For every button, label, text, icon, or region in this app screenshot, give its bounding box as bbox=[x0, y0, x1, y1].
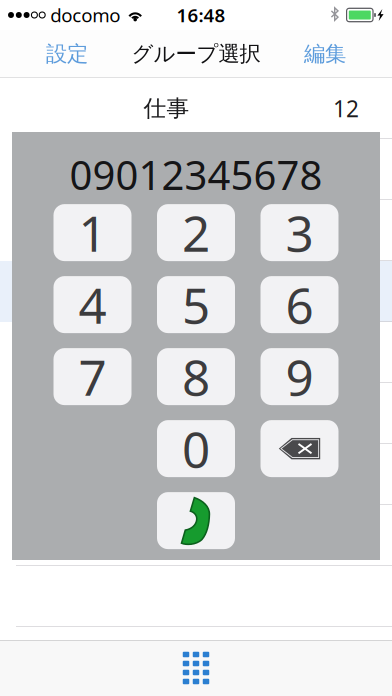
staticText: すべての連絡先 bbox=[79, 278, 240, 305]
staticText: 仕事 bbox=[143, 95, 189, 122]
staticText: docomo bbox=[50, 3, 120, 27]
button[interactable]: 9 bbox=[260, 348, 338, 405]
button[interactable]: 3 bbox=[260, 204, 338, 261]
button[interactable] bbox=[0, 444, 392, 505]
button[interactable]: 7 bbox=[53, 348, 131, 405]
button[interactable]: 友人 bbox=[0, 139, 392, 200]
staticText: 友人 bbox=[143, 156, 189, 183]
staticText: 276 bbox=[320, 276, 359, 306]
button[interactable]: 設定 bbox=[32, 31, 102, 77]
button[interactable]: 8 bbox=[157, 348, 235, 405]
button[interactable]: 編集 bbox=[290, 31, 360, 77]
button[interactable] bbox=[0, 505, 392, 566]
button[interactable]: 2 bbox=[157, 204, 235, 261]
staticText: 家族 bbox=[150, 217, 196, 244]
button[interactable]: 6 bbox=[260, 276, 338, 333]
staticText: 2 bbox=[182, 200, 210, 265]
button[interactable]: すべての連絡先 bbox=[0, 261, 392, 322]
staticText: 4 bbox=[78, 272, 106, 337]
staticText: 09012345678 bbox=[69, 148, 322, 201]
button[interactable]: 4 bbox=[53, 276, 131, 333]
staticText: 16:48 bbox=[176, 3, 225, 27]
staticText: 3 bbox=[285, 200, 313, 265]
staticText: グループ選択 bbox=[131, 41, 260, 67]
button[interactable]: 家族 bbox=[0, 200, 392, 261]
staticText: 9 bbox=[285, 344, 313, 409]
staticText: 0 bbox=[182, 416, 210, 481]
staticText: 12 bbox=[333, 93, 359, 123]
button[interactable] bbox=[0, 383, 392, 444]
button[interactable]: 0 bbox=[157, 420, 235, 477]
button[interactable] bbox=[0, 566, 392, 627]
staticText: 7 bbox=[78, 344, 106, 409]
staticText: 設定 bbox=[46, 41, 88, 67]
button[interactable]: Keypad bbox=[0, 640, 392, 696]
staticText: 編集 bbox=[304, 41, 346, 67]
staticText: 1 bbox=[78, 200, 106, 265]
button[interactable]: 仕事 bbox=[0, 78, 392, 139]
staticText: 5 bbox=[182, 272, 210, 337]
button[interactable]: Call bbox=[157, 492, 235, 549]
button[interactable] bbox=[0, 322, 392, 383]
button[interactable]: 5 bbox=[157, 276, 235, 333]
staticText: 6 bbox=[285, 272, 313, 337]
button[interactable]: 1 bbox=[53, 204, 131, 261]
staticText: 8 bbox=[182, 344, 210, 409]
button[interactable]: Delete bbox=[260, 420, 338, 477]
